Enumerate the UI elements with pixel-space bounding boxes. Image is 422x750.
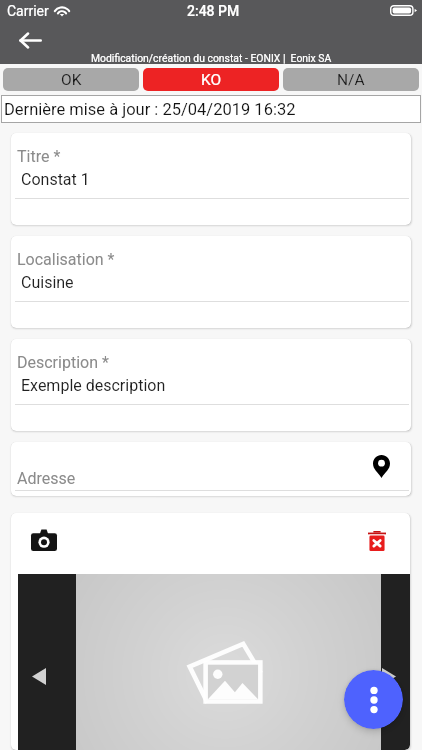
- staticText: Localisation *: [17, 250, 115, 269]
- staticText: Description *: [17, 353, 109, 372]
- button[interactable]: Localisation *: [11, 236, 411, 328]
- staticText: Dernière mise à jour : 25/04/2019 16:32: [4, 100, 296, 119]
- button[interactable]: More options: [344, 670, 403, 729]
- staticText: Adresse: [17, 469, 76, 488]
- button[interactable]: OK: [3, 68, 139, 91]
- button[interactable]: Previous photo: [23, 660, 55, 692]
- button[interactable]: Dernière mise à jour : 25/04/2019 16:32: [1, 95, 421, 123]
- button[interactable]: Back: [12, 25, 48, 55]
- staticText: Carrier: [7, 3, 49, 19]
- button[interactable]: Description *: [11, 339, 411, 431]
- button[interactable]: Next photo: [373, 660, 405, 692]
- button[interactable]: Pick location on map: [367, 452, 395, 480]
- staticText: 2:48 PM: [187, 3, 240, 19]
- staticText: Titre *: [17, 147, 61, 166]
- staticText: Constat 1: [21, 170, 90, 189]
- staticText: OK: [61, 71, 82, 89]
- staticText: KO: [201, 71, 222, 89]
- button[interactable]: N/A: [283, 68, 419, 91]
- staticText: Modification/création du constat - EONIX…: [91, 52, 332, 64]
- button[interactable]: Adresse: [11, 442, 411, 496]
- staticText: Exemple description: [21, 376, 166, 395]
- staticText: Cuisine: [21, 273, 74, 292]
- button[interactable]: Delete photo: [363, 527, 391, 555]
- button[interactable]: Titre *: [11, 133, 411, 225]
- button[interactable]: Take photo: [30, 526, 58, 554]
- staticText: N/A: [337, 71, 365, 89]
- button[interactable]: KO: [143, 68, 279, 91]
